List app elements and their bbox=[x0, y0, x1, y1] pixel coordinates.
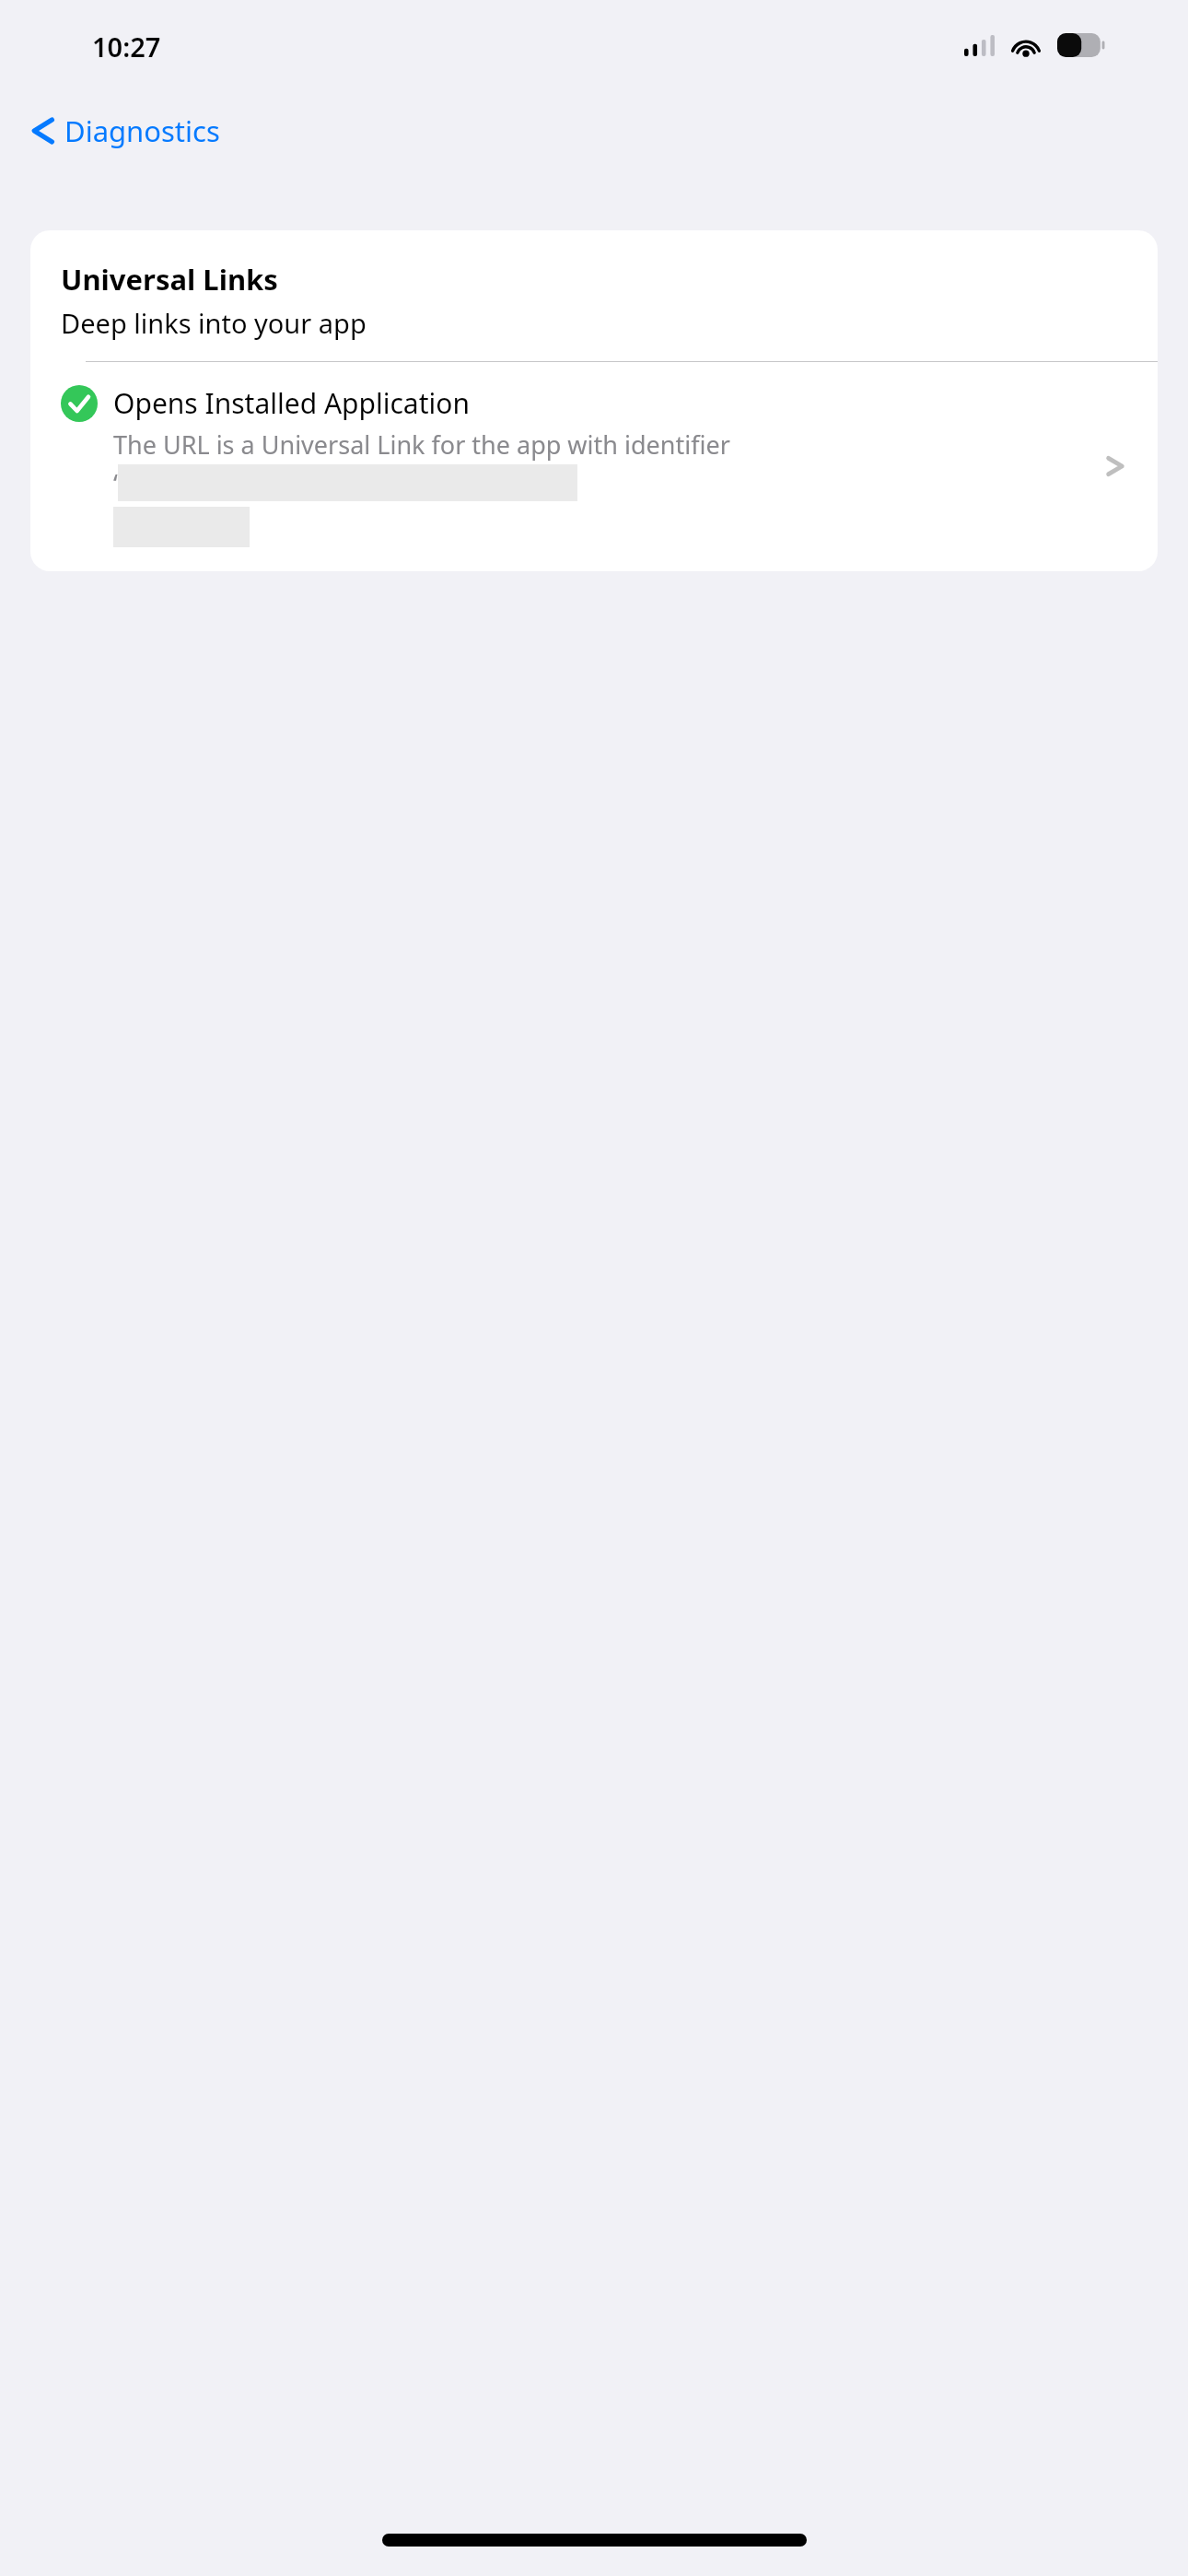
staticText: Deep links into your app bbox=[61, 305, 367, 341]
other: Details bbox=[1095, 446, 1136, 486]
button[interactable]: Diagnostics bbox=[24, 106, 227, 156]
staticText: Universal Links bbox=[61, 260, 278, 299]
staticText: Diagnostics bbox=[64, 111, 220, 150]
button[interactable]: Opens Installed Application bbox=[30, 362, 1158, 571]
staticText: Opens Installed Application bbox=[113, 384, 470, 422]
staticText: 10:27 bbox=[92, 29, 161, 64]
staticText: The URL is a Universal Link for the app … bbox=[113, 427, 730, 462]
staticText: ‘ bbox=[113, 466, 118, 500]
